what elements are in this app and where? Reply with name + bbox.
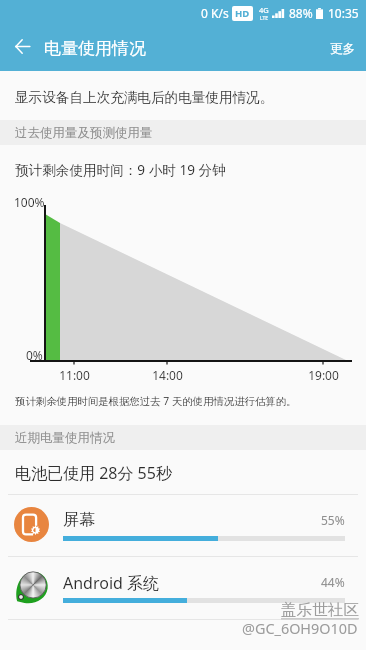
staticText: 电量使用情况: [44, 38, 146, 59]
staticText: 预计剩余使用时间：9 小时 19 分钟: [15, 160, 226, 179]
staticText: 4G: [259, 5, 269, 15]
button[interactable]: 屏幕: [0, 494, 366, 556]
staticText: 44%: [321, 574, 345, 590]
staticText: 11:00: [59, 367, 90, 383]
button[interactable]: 更多: [314, 31, 366, 67]
staticText: @GC_6OH9O10D: [242, 619, 358, 639]
staticText: 显示设备自上次充满电后的电量使用情况。: [15, 89, 274, 106]
button[interactable]: Back: [0, 24, 45, 69]
staticText: 10:35: [328, 5, 359, 21]
staticText: 近期电量使用情况: [15, 430, 115, 446]
staticText: 55%: [321, 512, 345, 528]
staticText: 100%: [14, 194, 45, 210]
staticText: 0 K/s: [201, 5, 229, 21]
staticText: 屏幕: [63, 510, 95, 530]
staticText: 0%: [26, 347, 43, 363]
staticText: 19:00: [308, 367, 339, 383]
staticText: LTE: [260, 15, 269, 22]
button[interactable]: Android 系统: [0, 556, 366, 618]
staticText: 14:00: [152, 367, 183, 383]
staticText: 88%: [289, 5, 313, 21]
staticText: 盖乐世社区: [281, 600, 359, 620]
staticText: 过去使用量及预测使用量: [15, 125, 153, 141]
staticText: 电池已使用 28分 55秒: [15, 462, 172, 484]
staticText: 更多: [330, 41, 355, 57]
staticText: 预计剩余使用时间是根据您过去 7 天的使用情况进行估算的。: [15, 394, 297, 408]
staticText: HD: [235, 7, 250, 20]
staticText: Android 系统: [63, 572, 160, 594]
